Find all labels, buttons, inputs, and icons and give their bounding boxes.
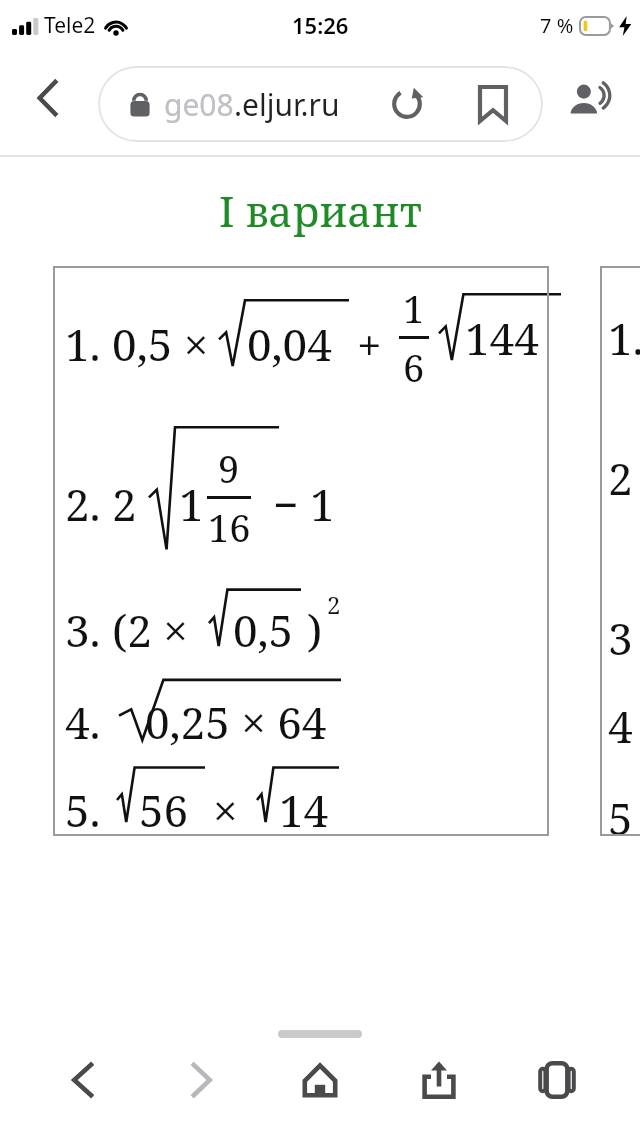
- staticText: Tele2: [44, 11, 96, 40]
- staticText: ): [307, 600, 323, 660]
- staticText: 5: [608, 788, 633, 848]
- button[interactable]: Reload: [380, 77, 434, 131]
- staticText: 0,5: [233, 600, 294, 660]
- staticText: 1: [179, 474, 204, 534]
- staticText: 4: [608, 696, 633, 756]
- staticText: 56: [139, 780, 189, 840]
- staticText: 14: [279, 780, 329, 840]
- staticText: +: [357, 314, 382, 374]
- staticText: 0,04: [247, 314, 332, 374]
- staticText: 1. 0,5 ×: [65, 314, 209, 374]
- button[interactable]: ge08: [98, 66, 543, 142]
- staticText: 2: [327, 588, 341, 621]
- button[interactable]: Bookmark: [466, 77, 520, 131]
- staticText: 3: [608, 608, 633, 668]
- button[interactable]: Home: [284, 1044, 356, 1116]
- staticText: 3. (2 ×: [65, 600, 188, 660]
- staticText: ×: [213, 780, 238, 840]
- staticText: 0,25 × 64: [145, 692, 327, 752]
- staticText: 1.: [608, 308, 640, 368]
- staticText: .eljur.ru: [234, 84, 340, 125]
- button[interactable]: Back: [18, 68, 78, 128]
- staticText: 1: [403, 282, 425, 334]
- staticText: 16: [208, 501, 251, 553]
- staticText: 144: [465, 308, 539, 368]
- staticText: 4.: [65, 692, 101, 752]
- button[interactable]: Forward: [165, 1044, 237, 1116]
- button[interactable]: Share: [403, 1044, 475, 1116]
- staticText: 5.: [65, 780, 101, 840]
- button[interactable]: Back: [47, 1044, 119, 1116]
- staticText: 2. 2: [65, 474, 137, 534]
- staticText: ge08: [164, 84, 234, 125]
- staticText: 2: [608, 448, 633, 508]
- staticText: I вариант: [219, 182, 422, 239]
- button[interactable]: Tabs: [521, 1044, 593, 1116]
- button[interactable]: Voice search: [558, 68, 622, 132]
- staticText: 15:26: [292, 10, 349, 40]
- staticText: 7 %: [540, 12, 574, 39]
- staticText: 6: [403, 341, 425, 393]
- staticText: − 1: [273, 474, 335, 534]
- staticText: 9: [218, 442, 240, 494]
